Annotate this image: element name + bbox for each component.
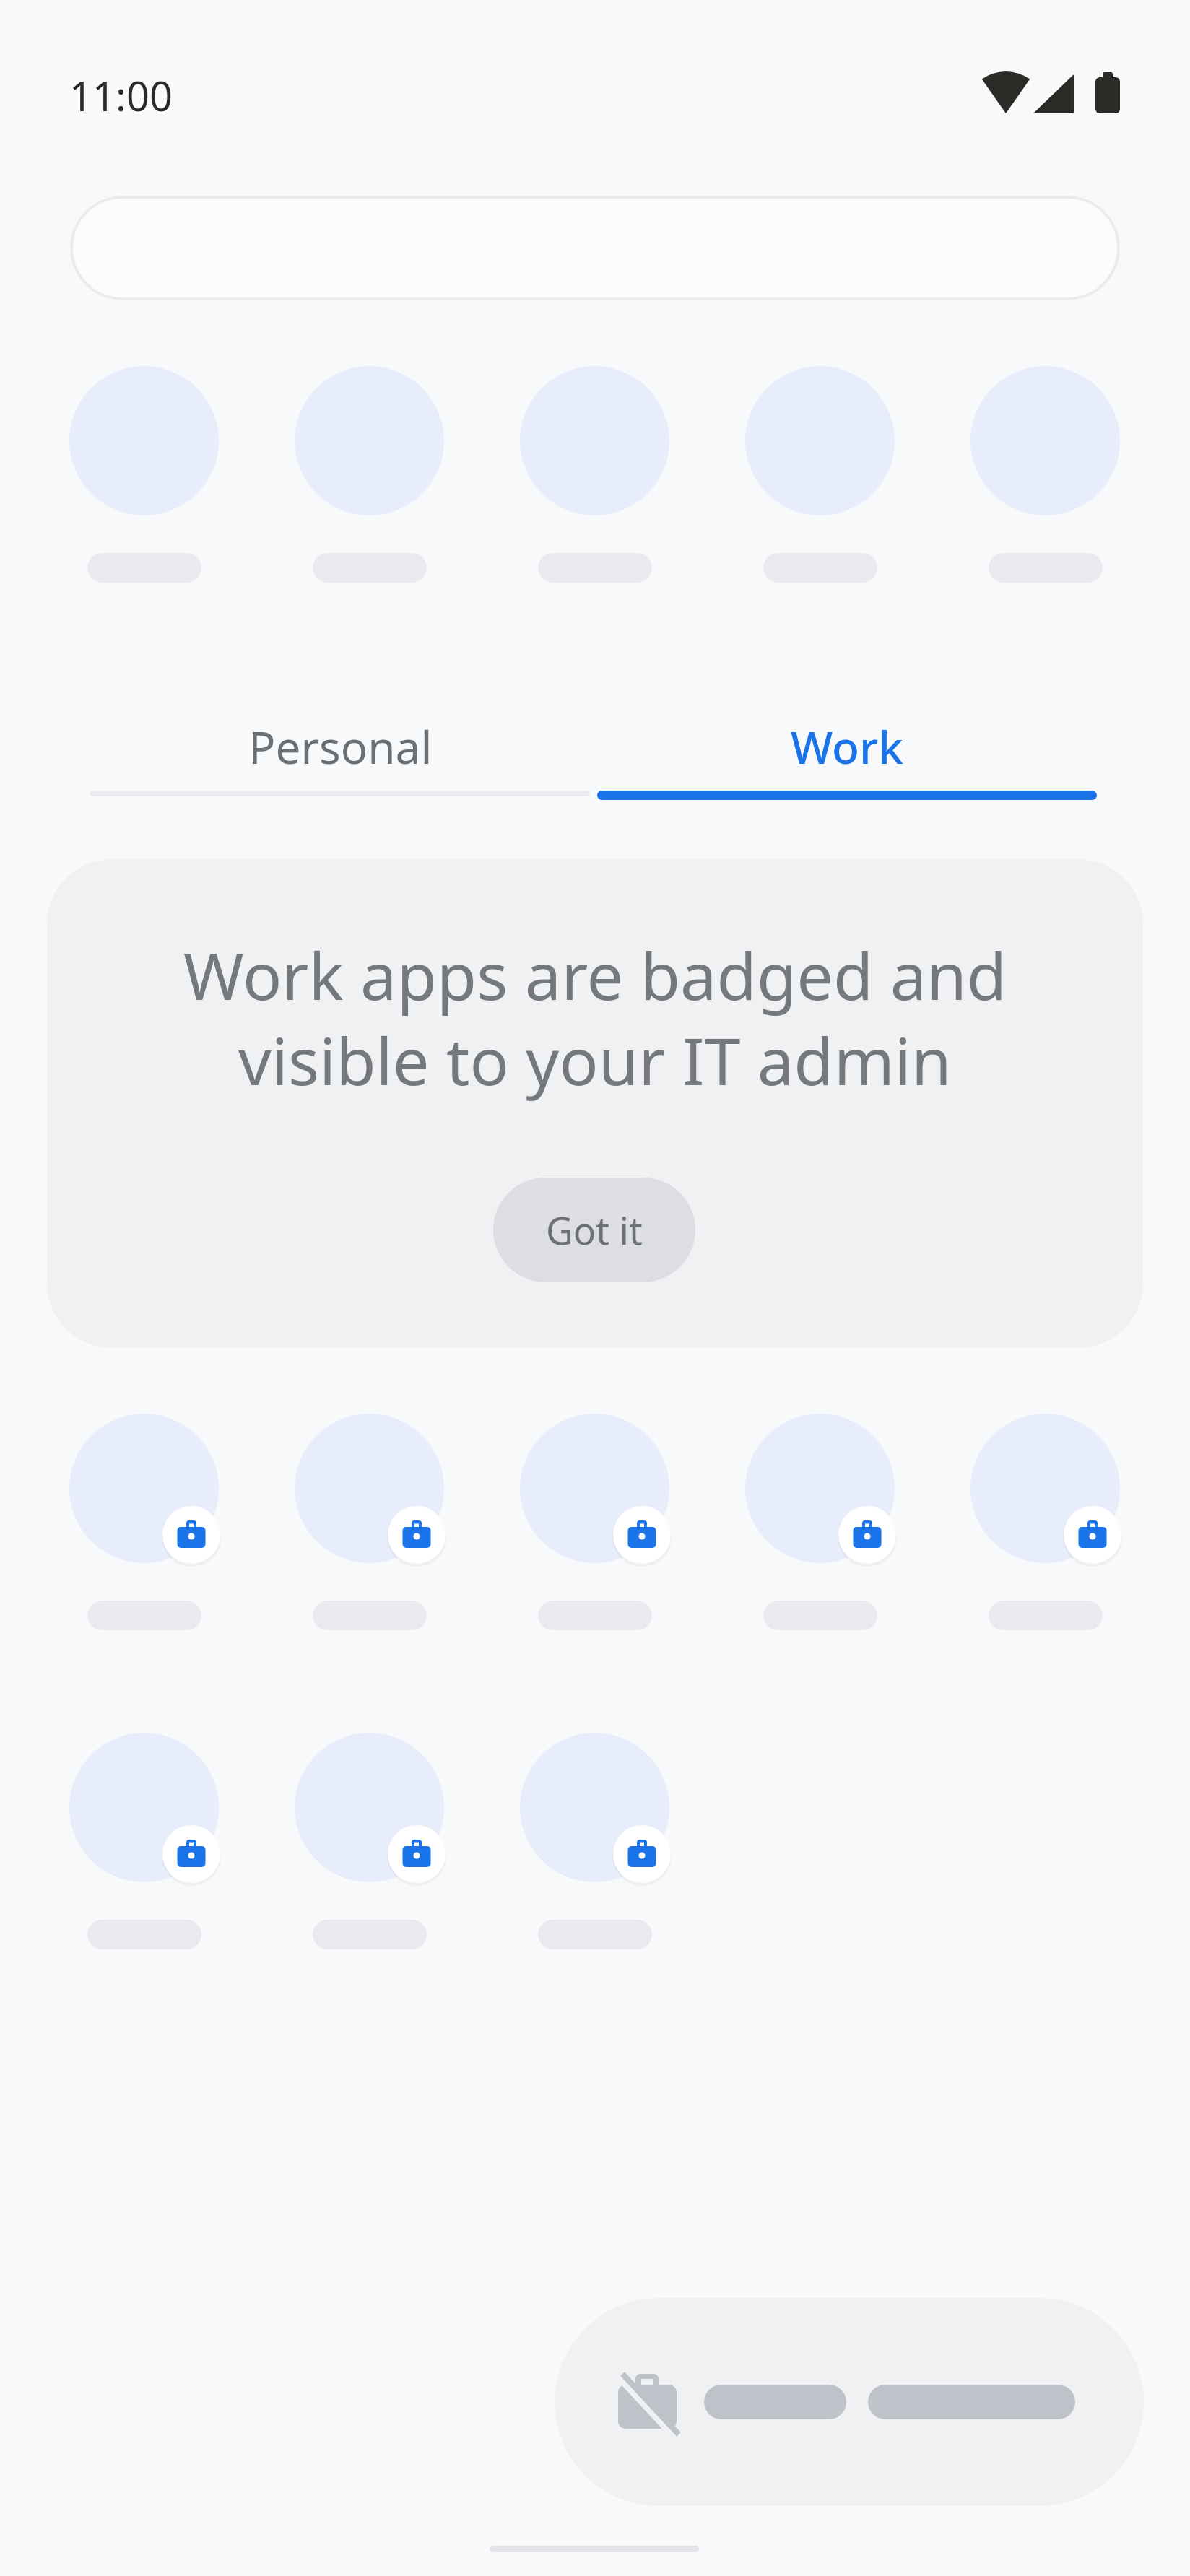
button[interactable]: [295, 1733, 444, 1882]
staticText: Work: [791, 716, 903, 777]
button[interactable]: [69, 1414, 219, 1563]
button[interactable]: [970, 1414, 1120, 1563]
button[interactable]: [520, 366, 669, 515]
button[interactable]: [520, 1733, 669, 1882]
button[interactable]: Got it: [493, 1178, 695, 1282]
staticText: visible to your IT admin: [238, 1016, 952, 1105]
staticText: 11:00: [69, 68, 173, 114]
button[interactable]: [520, 1414, 669, 1563]
button[interactable]: Personal: [90, 714, 590, 779]
button[interactable]: [69, 366, 219, 515]
button[interactable]: [970, 366, 1120, 515]
button[interactable]: [70, 196, 1120, 300]
button[interactable]: [69, 1733, 219, 1882]
button[interactable]: [745, 1414, 895, 1563]
button[interactable]: [555, 2298, 1144, 2506]
button[interactable]: [295, 1414, 444, 1563]
staticText: Personal: [248, 716, 433, 777]
button[interactable]: Work: [597, 714, 1097, 779]
staticText: Got it: [546, 1204, 643, 1256]
button[interactable]: [745, 366, 895, 515]
staticText: Work apps are badged and: [183, 931, 1007, 1019]
button[interactable]: [295, 366, 444, 515]
